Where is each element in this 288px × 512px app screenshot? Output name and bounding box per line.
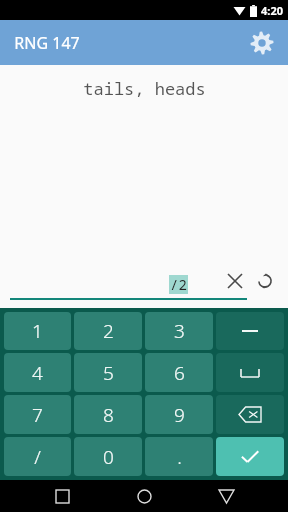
button[interactable]: Space [216, 353, 284, 392]
button[interactable]: 7 [4, 395, 71, 434]
button[interactable]: 8 [74, 395, 142, 434]
staticText: 4:20 [261, 3, 283, 18]
button[interactable]: 2 [74, 312, 142, 350]
staticText: RNG 147 [14, 32, 80, 54]
button[interactable]: Clear [220, 266, 250, 296]
staticText: 5 [103, 360, 114, 386]
button[interactable]: 3 [145, 312, 213, 350]
staticText: 1 [32, 318, 43, 344]
staticText: 4 [32, 360, 43, 386]
button[interactable]: Settings [244, 25, 280, 61]
button[interactable]: 4 [4, 353, 71, 392]
button[interactable]: /2 [10, 260, 247, 308]
staticText: 9 [174, 402, 185, 428]
staticText: 7 [32, 402, 43, 428]
staticText: 3 [174, 318, 185, 344]
button[interactable]: 6 [145, 353, 213, 392]
button[interactable]: Back [206, 480, 246, 512]
button[interactable]: 5 [74, 353, 142, 392]
staticText: . [177, 444, 182, 470]
button[interactable]: Backspace [216, 395, 284, 434]
button[interactable]: 1 [4, 312, 71, 350]
button[interactable]: 0 [74, 437, 142, 476]
button[interactable]: 9 [145, 395, 213, 434]
button[interactable]: Minus [216, 312, 284, 350]
staticText: 0 [103, 444, 114, 470]
button[interactable]: Reroll [250, 266, 280, 296]
button[interactable]: Enter [216, 437, 284, 476]
button[interactable]: / [4, 437, 71, 476]
staticText: /2 [170, 275, 187, 294]
staticText: tails, heads [83, 77, 206, 100]
staticText: 2 [103, 318, 114, 344]
button[interactable]: Home [124, 480, 164, 512]
staticText: / [34, 444, 41, 470]
button[interactable]: Recents [42, 480, 82, 512]
button[interactable]: . [145, 437, 213, 476]
staticText: 8 [103, 402, 114, 428]
staticText: 6 [174, 360, 185, 386]
